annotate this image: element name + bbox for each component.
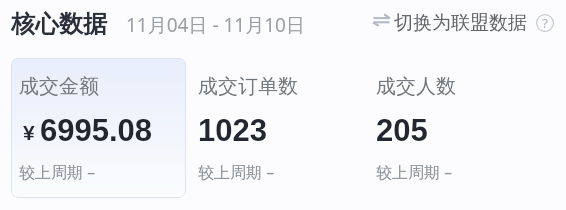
other: 切换为联盟数据 bbox=[373, 14, 390, 28]
staticText: 核心数据 bbox=[11, 9, 107, 39]
button[interactable]: 成交订单数 bbox=[190, 58, 365, 198]
staticText: 6995.08 bbox=[40, 113, 153, 148]
button[interactable]: 成交金额 bbox=[11, 58, 186, 198]
staticText: 较上周期 – bbox=[376, 161, 453, 183]
staticText: 较上周期 – bbox=[198, 161, 275, 183]
button[interactable]: 成交人数 bbox=[368, 58, 543, 198]
staticText: 成交人数 bbox=[376, 74, 456, 99]
staticText: 1023 bbox=[198, 113, 267, 148]
staticText: ¥ bbox=[23, 121, 35, 144]
staticText: 11月04日 - 11月10日 bbox=[126, 12, 305, 38]
other: 帮助说明 bbox=[536, 14, 554, 32]
staticText: 205 bbox=[376, 113, 428, 148]
staticText: 较上周期 – bbox=[19, 161, 96, 183]
staticText: ? bbox=[542, 14, 548, 32]
staticText: 成交订单数 bbox=[198, 74, 298, 99]
staticText: 成交金额 bbox=[19, 74, 99, 99]
button[interactable]: 切换为联盟数据 bbox=[373, 10, 554, 36]
staticText: 切换为联盟数据 bbox=[394, 11, 527, 35]
